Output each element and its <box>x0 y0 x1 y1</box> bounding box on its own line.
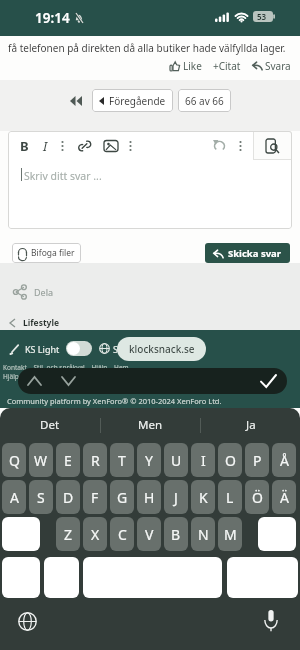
staticText: L <box>226 488 234 507</box>
staticText: Ja <box>246 417 256 433</box>
staticText: C <box>118 525 127 544</box>
staticText: R <box>91 451 100 470</box>
staticText: Skicka svar <box>228 247 282 260</box>
staticText: få telefonen på direkten då alla butiker… <box>8 41 286 55</box>
staticText: Dela <box>34 286 54 298</box>
staticText: H <box>144 488 155 507</box>
staticText: F <box>91 488 99 507</box>
staticText: X <box>91 525 100 544</box>
staticText: Community platform by XenForo® © 2010-20… <box>7 396 222 406</box>
staticText: J <box>174 488 178 507</box>
staticText: A <box>10 488 19 507</box>
staticText: 66 av 66 <box>185 94 224 108</box>
staticText: Z <box>64 525 73 544</box>
staticText: T <box>118 451 126 470</box>
staticText: Bifoga filer <box>31 247 75 259</box>
staticText: K <box>199 488 208 507</box>
staticText: V <box>145 525 154 544</box>
staticText: Ä <box>280 488 289 507</box>
staticText: U <box>171 451 182 470</box>
staticText: Lifestyle <box>23 317 60 329</box>
staticText: Sve <box>113 343 128 355</box>
staticText: Skriv ditt svar ... <box>24 169 102 183</box>
staticText: Det <box>40 417 60 433</box>
staticText: S <box>37 488 45 507</box>
staticText: Kontakt Stil- och språkval Hjälp Hem <box>3 363 129 372</box>
staticText: P <box>253 451 262 470</box>
staticText: E <box>64 451 72 470</box>
staticText: Q <box>9 451 20 470</box>
staticText: 53 <box>257 11 267 22</box>
staticText: klocksnack.se <box>129 342 195 356</box>
staticText: I <box>201 451 206 470</box>
staticText: KS Light <box>25 343 60 355</box>
staticText: G <box>117 488 128 507</box>
staticText: Hjälp <box>3 372 19 381</box>
staticText: Y <box>145 451 153 470</box>
staticText: 19:14 <box>35 9 70 27</box>
staticText: I <box>43 137 48 155</box>
staticText: Å <box>280 451 289 470</box>
staticText: N <box>198 525 209 544</box>
staticText: W <box>34 451 48 470</box>
staticText: Men <box>138 417 163 433</box>
staticText: Föregående <box>109 94 166 108</box>
staticText: Like <box>183 59 202 73</box>
staticText: Ö <box>252 488 263 507</box>
staticText: O <box>225 451 236 470</box>
staticText: B <box>20 137 29 155</box>
staticText: Svara <box>265 59 291 73</box>
staticText: D <box>63 488 74 507</box>
staticText: B <box>171 525 181 544</box>
staticText: M <box>224 525 237 544</box>
staticText: +Citat <box>213 59 241 73</box>
